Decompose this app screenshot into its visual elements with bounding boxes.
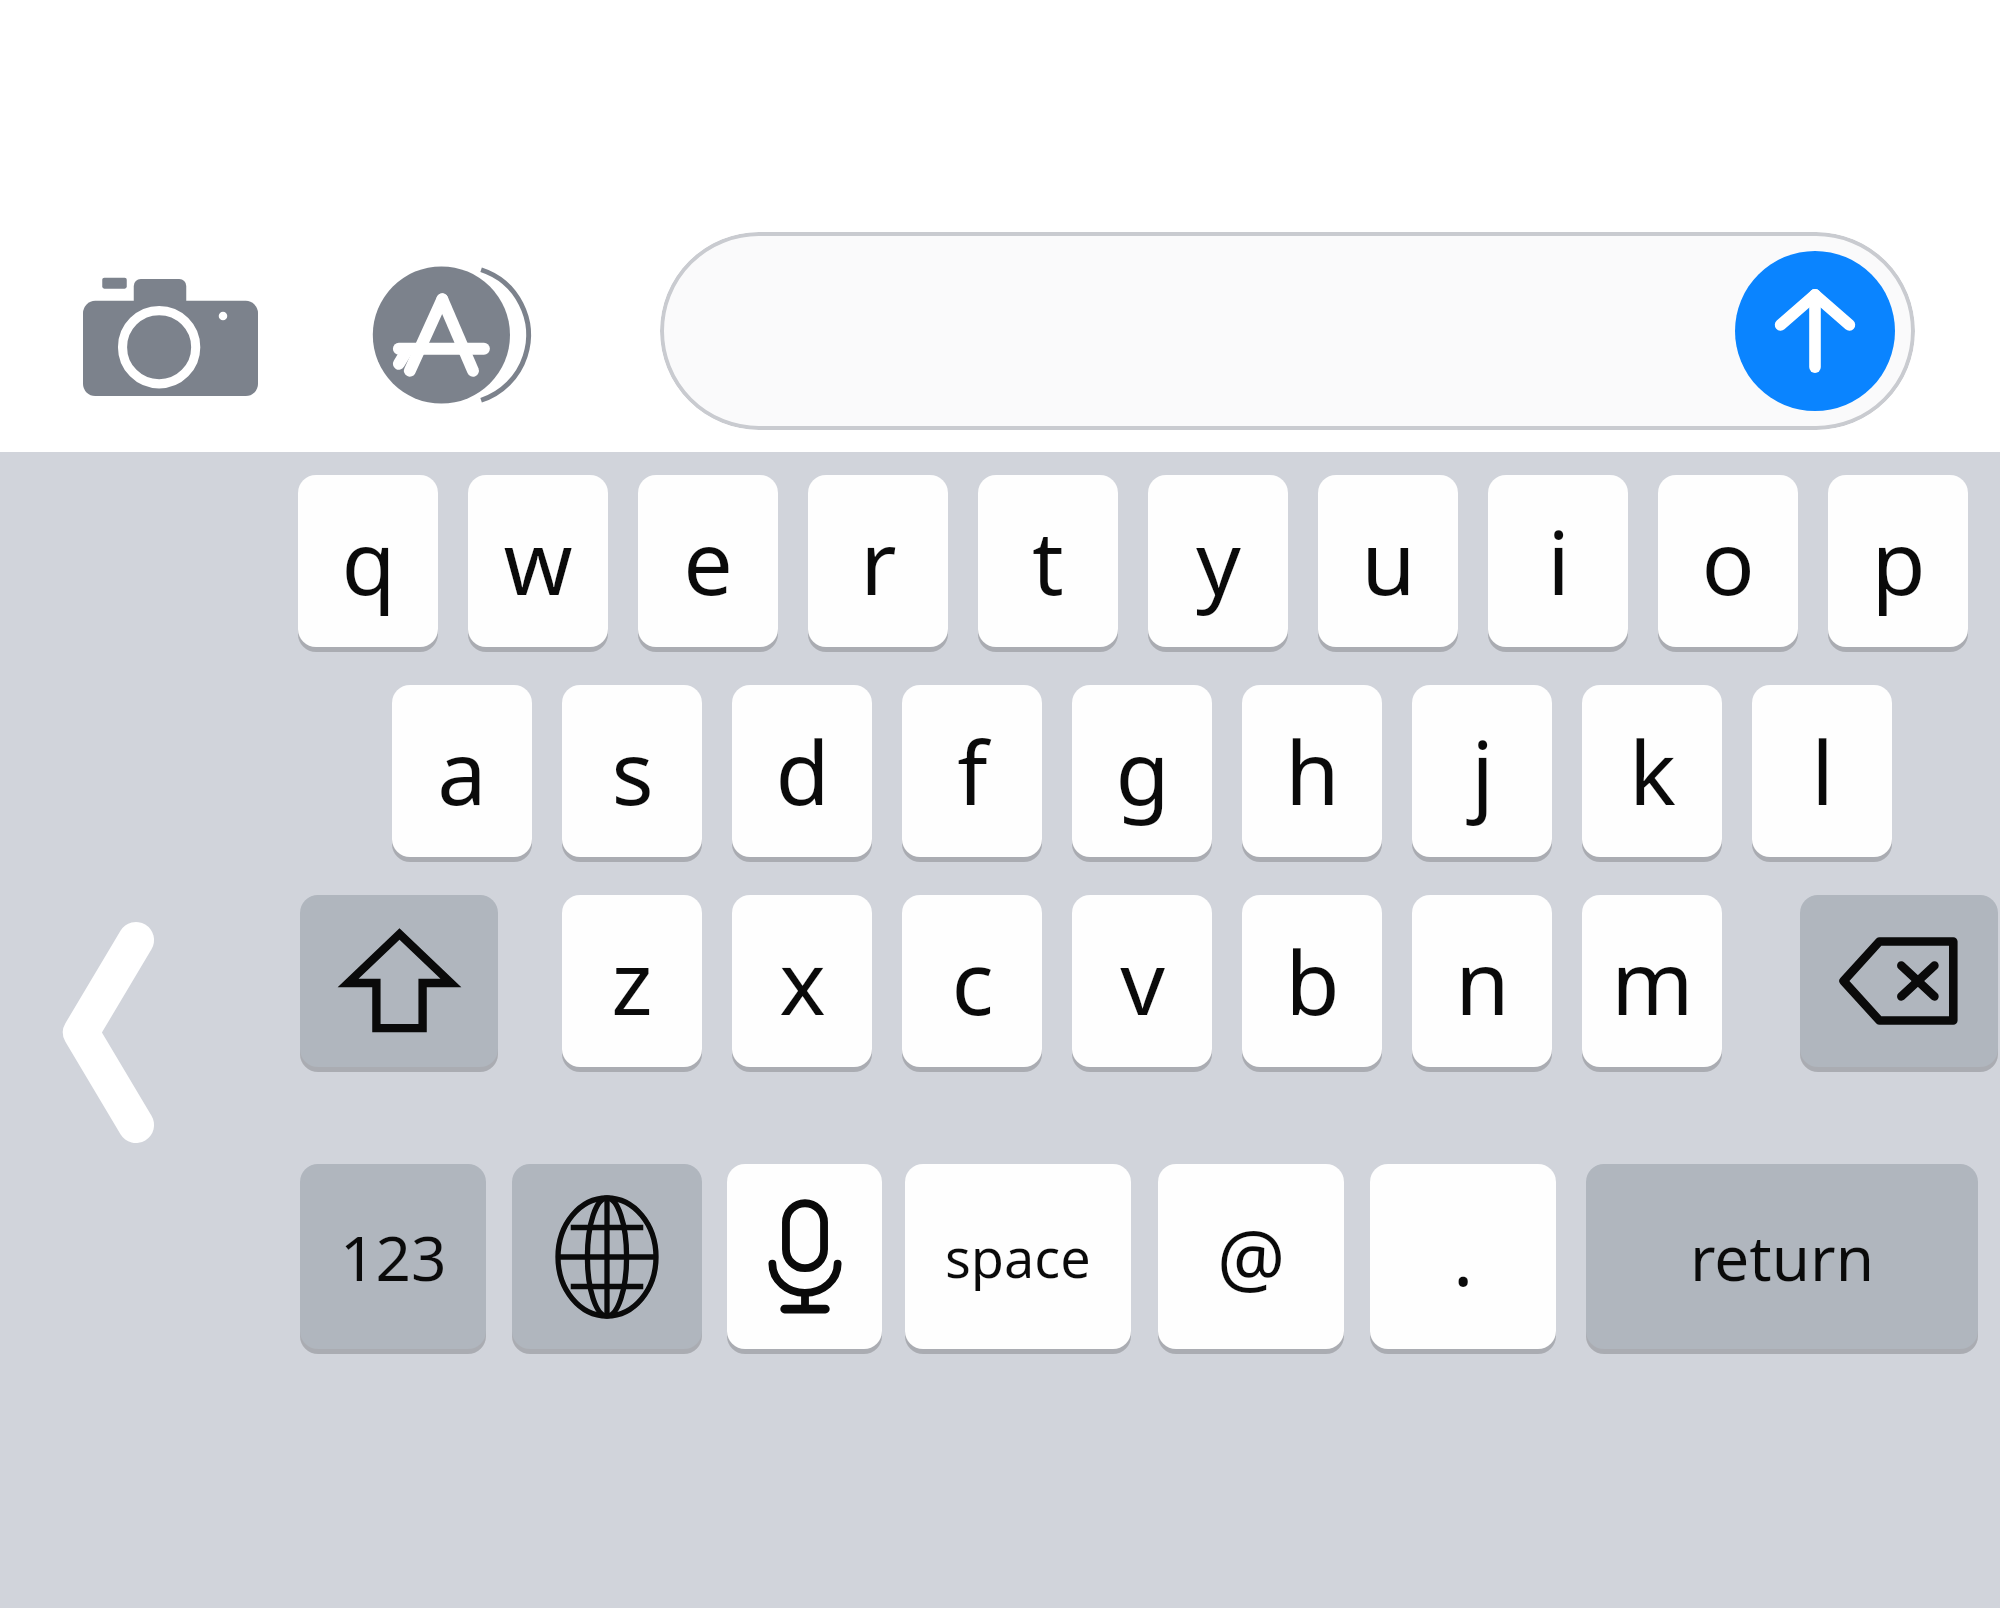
staticText: v [1120, 921, 1165, 1041]
button[interactable]: o [1658, 475, 1798, 647]
button[interactable]: q [298, 475, 438, 647]
button[interactable]: b [1242, 895, 1382, 1067]
button[interactable]: d [732, 685, 872, 857]
button[interactable]: v [1072, 895, 1212, 1067]
button[interactable]: i [1488, 475, 1628, 647]
button[interactable]: Change keyboard [512, 1164, 702, 1349]
button[interactable]: Dictate [727, 1164, 882, 1349]
staticText: @ [1217, 1205, 1286, 1309]
staticText: h [1285, 711, 1340, 831]
button[interactable]: h [1242, 685, 1382, 857]
staticText: o [1701, 501, 1755, 621]
button[interactable]: e [638, 475, 778, 647]
button[interactable]: k [1582, 685, 1722, 857]
button[interactable]: z [562, 895, 702, 1067]
button[interactable]: s [562, 685, 702, 857]
button[interactable]: j [1412, 685, 1552, 857]
staticText: f [957, 711, 988, 831]
button[interactable]: Shift [300, 895, 498, 1067]
staticText: d [775, 711, 830, 831]
staticText: y [1196, 501, 1241, 621]
staticText: g [1115, 711, 1170, 831]
staticText: w [503, 501, 573, 621]
staticText: r [860, 501, 897, 621]
staticText: b [1285, 921, 1340, 1041]
button[interactable]: Camera [78, 270, 263, 400]
button[interactable]: t [978, 475, 1118, 647]
button[interactable]: r [808, 475, 948, 647]
staticText: 123 [340, 1215, 447, 1299]
button[interactable]: a [392, 685, 532, 857]
button[interactable]: Send [660, 232, 1915, 430]
button[interactable]: Space [905, 1164, 1131, 1349]
button[interactable]: x [732, 895, 872, 1067]
staticText: u [1361, 501, 1416, 621]
staticText: space [945, 1220, 1091, 1294]
staticText: i [1547, 501, 1570, 621]
staticText: z [611, 921, 653, 1041]
staticText: l [1811, 711, 1834, 831]
staticText: e [683, 501, 733, 621]
staticText: j [1471, 711, 1494, 831]
button[interactable]: l [1752, 685, 1892, 857]
staticText: k [1629, 711, 1676, 831]
staticText: p [1871, 501, 1926, 621]
button[interactable]: n [1412, 895, 1552, 1067]
button[interactable]: w [468, 475, 608, 647]
button[interactable]: g [1072, 685, 1212, 857]
staticText: return [1690, 1215, 1874, 1299]
staticText: s [611, 711, 654, 831]
button[interactable]: Apps [360, 262, 555, 407]
staticText: t [1032, 501, 1064, 621]
button[interactable]: y [1148, 475, 1288, 647]
button[interactable]: Send [1735, 251, 1895, 411]
button[interactable]: f [902, 685, 1042, 857]
button[interactable]: m [1582, 895, 1722, 1067]
staticText: n [1455, 921, 1510, 1041]
button[interactable]: Backspace [1800, 895, 1998, 1067]
button[interactable]: Numbers [300, 1164, 486, 1349]
staticText: x [779, 921, 826, 1041]
button[interactable]: c [902, 895, 1042, 1067]
button[interactable]: p [1828, 475, 1968, 647]
button[interactable]: Period [1370, 1164, 1556, 1349]
staticText: a [437, 711, 487, 831]
staticText: m [1611, 921, 1694, 1041]
other: Back [60, 925, 155, 1140]
staticText: q [341, 501, 396, 621]
staticText: c [951, 921, 994, 1041]
button[interactable]: u [1318, 475, 1458, 647]
button[interactable]: At sign [1158, 1164, 1344, 1349]
button[interactable]: Return [1586, 1164, 1978, 1349]
staticText: . [1453, 1205, 1474, 1309]
